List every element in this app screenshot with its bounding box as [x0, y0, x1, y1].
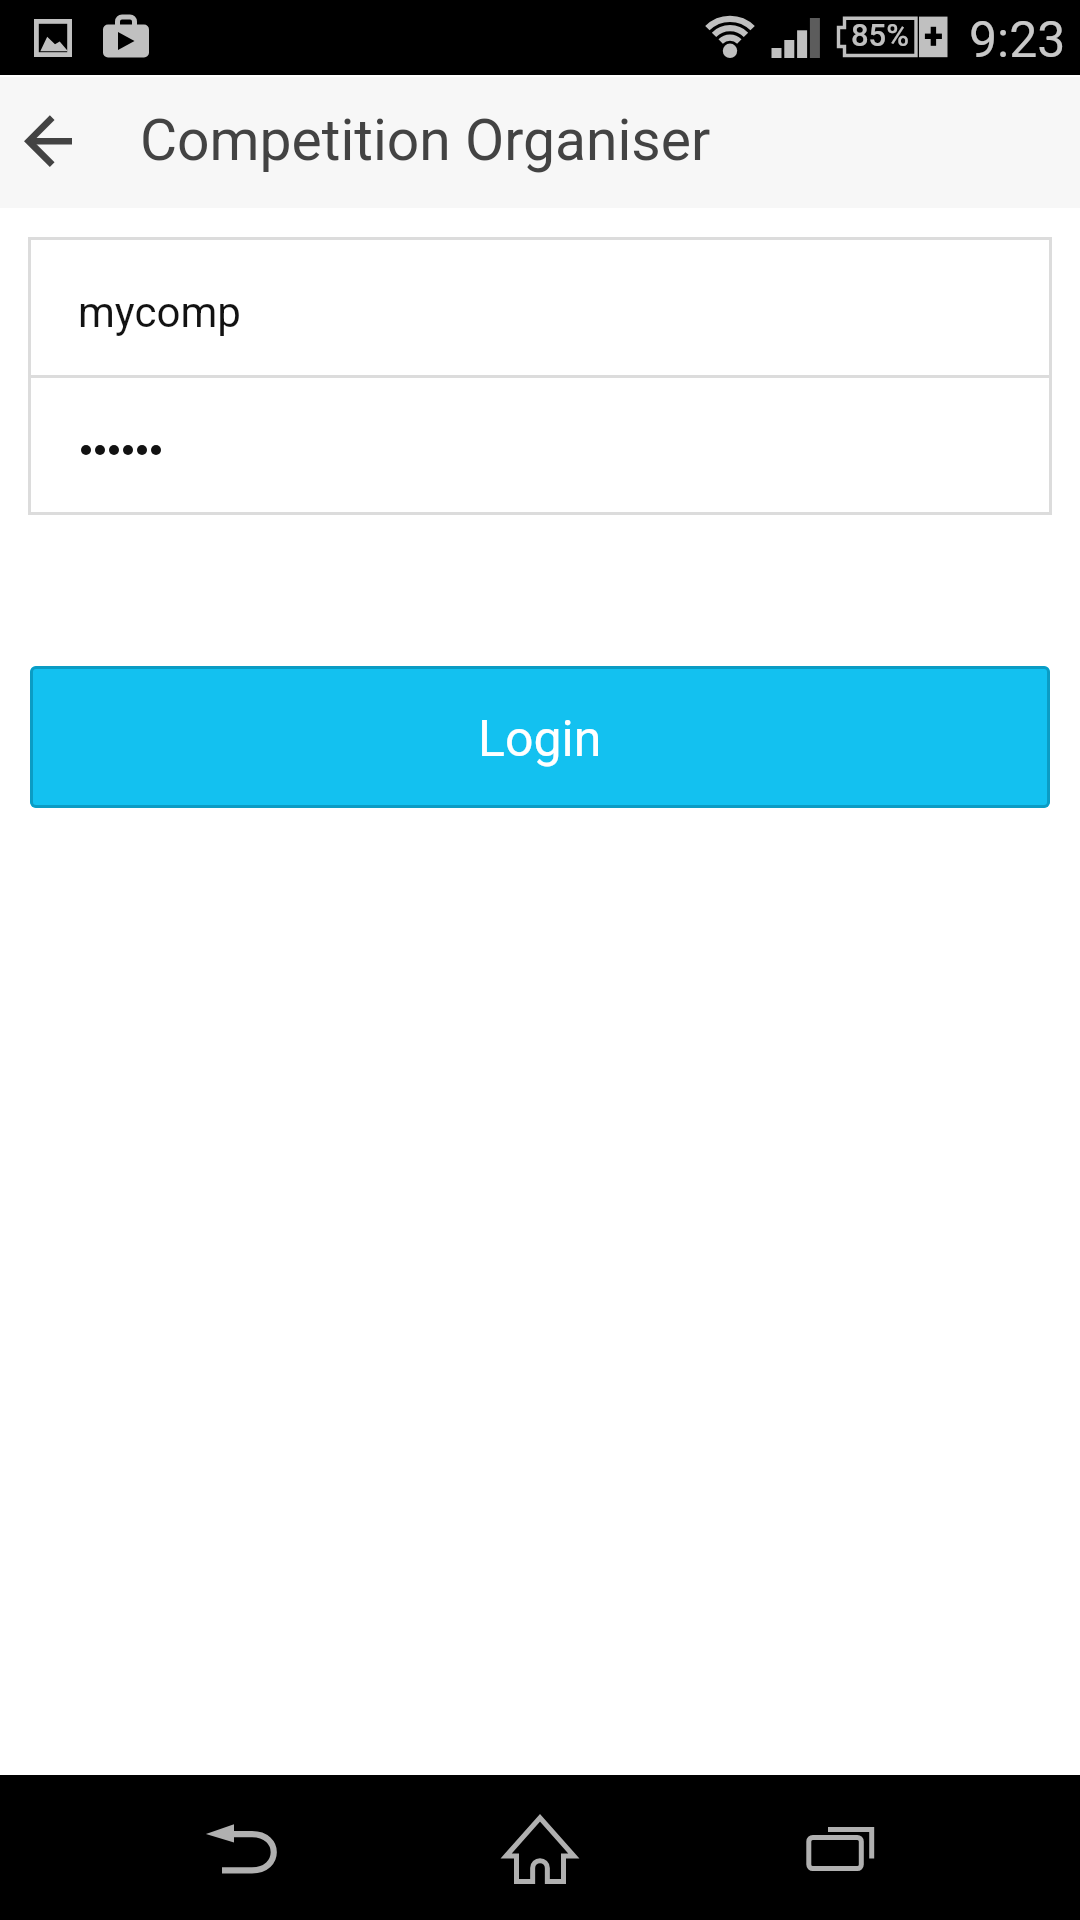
button[interactable] [28, 378, 1052, 515]
staticText: Competition Organiser [140, 107, 711, 174]
staticText: Login [478, 710, 602, 769]
button[interactable]: Login [30, 666, 1050, 808]
button[interactable]: Recent apps [770, 1775, 910, 1920]
staticText: 9:23 [969, 11, 1066, 70]
staticText: mycomp [78, 288, 241, 337]
button[interactable]: Back [171, 1775, 311, 1920]
staticText: 85% [851, 17, 910, 53]
button[interactable]: Navigate up [0, 77, 96, 208]
button[interactable]: Home [470, 1775, 610, 1920]
button[interactable]: mycomp [28, 237, 1052, 375]
